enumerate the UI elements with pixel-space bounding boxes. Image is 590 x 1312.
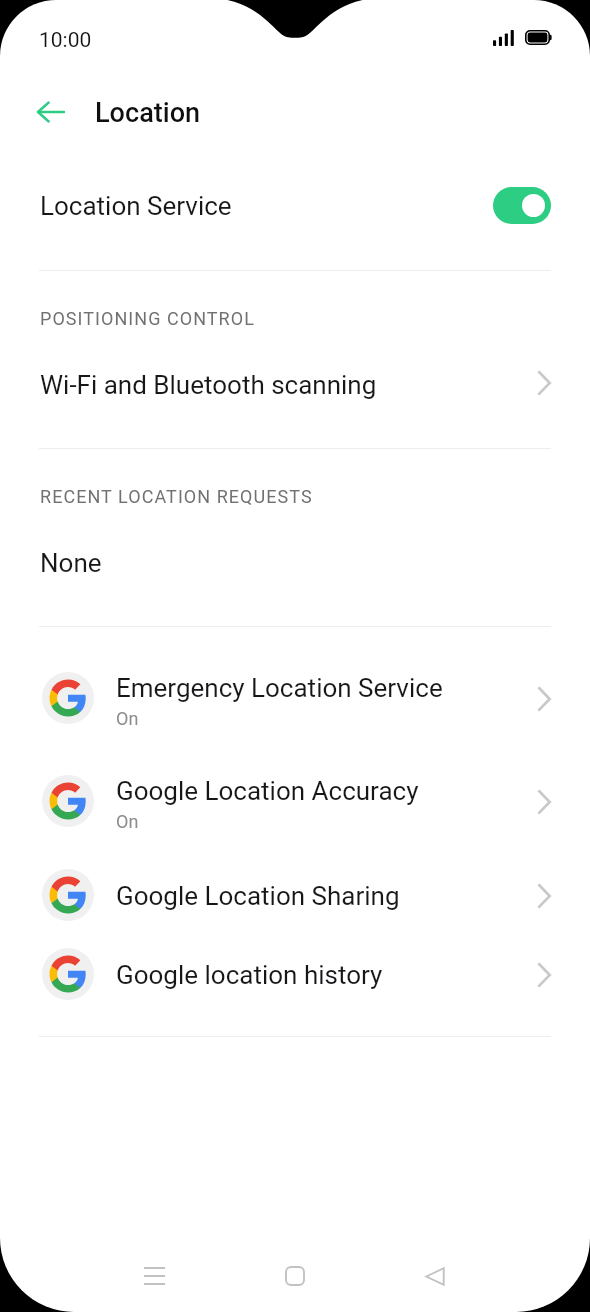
staticText: Location Service <box>40 191 232 221</box>
button[interactable]: Home <box>265 1246 325 1306</box>
staticText: RECENT LOCATION REQUESTS <box>40 486 313 507</box>
button[interactable]: None <box>0 528 590 592</box>
staticText: Google location history <box>116 960 383 990</box>
staticText: Emergency Location Service <box>116 673 443 703</box>
button[interactable]: Recent apps <box>124 1246 184 1306</box>
staticText: On <box>116 708 139 729</box>
button[interactable]: Google Location Sharing <box>0 855 590 935</box>
button[interactable]: Back <box>405 1246 465 1306</box>
button[interactable]: Location Service <box>0 163 590 248</box>
button[interactable]: Navigate up <box>25 86 77 138</box>
button[interactable]: Wi-Fi and Bluetooth scanning <box>0 348 590 418</box>
staticText: Google Location Sharing <box>116 881 400 911</box>
staticText: Wi-Fi and Bluetooth scanning <box>40 370 377 400</box>
staticText: On <box>116 811 139 832</box>
staticText: None <box>40 548 102 578</box>
staticText: Google Location Accuracy <box>116 776 419 806</box>
button[interactable]: Emergency Location Service <box>0 647 590 750</box>
staticText: Location <box>95 97 201 129</box>
button[interactable]: Google location history <box>0 934 590 1014</box>
staticText: POSITIONING CONTROL <box>40 308 255 329</box>
button[interactable]: Location Service, on <box>493 187 551 224</box>
other: Battery full <box>525 30 552 46</box>
staticText: 10:00 <box>39 28 92 53</box>
other: Mobile signal: 4 bars <box>493 30 514 46</box>
button[interactable]: Google Location Accuracy <box>0 750 590 853</box>
